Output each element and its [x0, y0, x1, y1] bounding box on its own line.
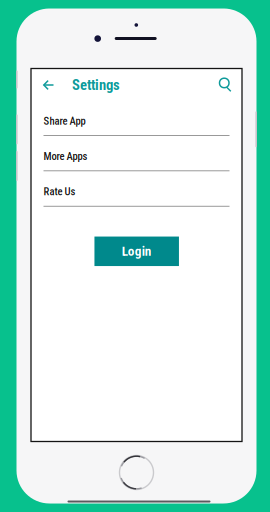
button[interactable]: Share App	[43, 110, 229, 146]
button[interactable]: Search	[214, 68, 238, 101]
staticText: Settings	[72, 76, 120, 94]
button[interactable]: Back	[36, 68, 60, 101]
button[interactable]: More Apps	[43, 146, 229, 181]
staticText: Share App	[43, 115, 85, 127]
button[interactable]: Rate Us	[43, 181, 229, 217]
button[interactable]: Login	[94, 237, 179, 266]
staticText: More Apps	[43, 150, 87, 163]
staticText: Login	[122, 243, 152, 259]
staticText: Rate Us	[43, 185, 75, 198]
